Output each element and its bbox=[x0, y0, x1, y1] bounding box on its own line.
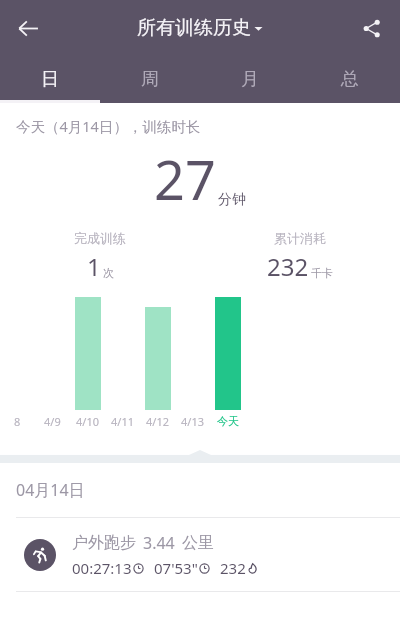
button[interactable]: Share bbox=[351, 8, 391, 48]
staticText: 今天（4月14日），训练时长 bbox=[16, 116, 201, 136]
staticText: 4/13 bbox=[181, 414, 204, 429]
staticText: 4/12 bbox=[146, 414, 169, 429]
staticText: 分钟 bbox=[218, 191, 246, 209]
button[interactable]: 日 bbox=[0, 56, 100, 103]
staticText: 4/10 bbox=[76, 414, 99, 429]
staticText: 00:27:13 bbox=[72, 558, 132, 578]
button[interactable]: 总 bbox=[300, 56, 400, 103]
staticText: 232 bbox=[220, 558, 246, 578]
staticText: 周 bbox=[141, 68, 159, 91]
staticText: 今天 bbox=[217, 414, 239, 428]
staticText: 8 bbox=[14, 414, 21, 429]
staticText: 户外跑步 bbox=[72, 533, 136, 553]
staticText: 4/11 bbox=[111, 414, 134, 429]
staticText: 总 bbox=[341, 68, 359, 91]
staticText: 3.44 bbox=[143, 532, 175, 554]
button[interactable]: 周 bbox=[100, 56, 200, 103]
button[interactable]: 户外跑步 bbox=[0, 518, 400, 592]
staticText: 完成训练 bbox=[74, 230, 126, 246]
staticText: 07'53" bbox=[154, 558, 198, 578]
staticText: 日 bbox=[41, 68, 59, 91]
staticText: 1 bbox=[87, 250, 101, 283]
staticText: 次 bbox=[103, 266, 114, 280]
button[interactable]: Back bbox=[8, 8, 48, 48]
staticText: 232 bbox=[267, 250, 309, 283]
staticText: 27 bbox=[154, 142, 216, 216]
button[interactable]: 所有训练历史 bbox=[137, 16, 263, 40]
button[interactable]: 月 bbox=[200, 56, 300, 103]
staticText: 千卡 bbox=[311, 266, 333, 280]
staticText: 公里 bbox=[182, 533, 214, 553]
staticText: 累计消耗 bbox=[274, 230, 326, 246]
staticText: 所有训练历史 bbox=[137, 16, 251, 40]
staticText: 4/9 bbox=[44, 414, 61, 429]
staticText: 月 bbox=[241, 68, 259, 91]
staticText: 04月14日 bbox=[16, 479, 85, 501]
